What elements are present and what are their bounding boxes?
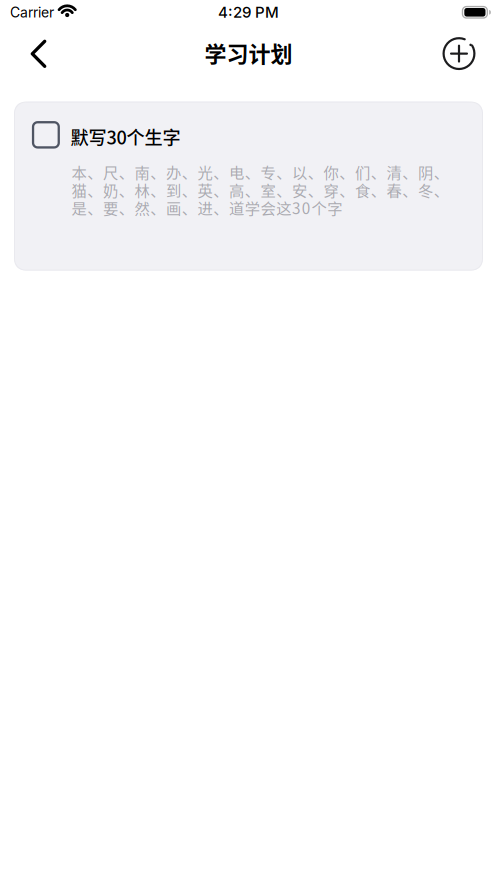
staticText: 学习计划 (204, 37, 292, 69)
staticText: Carrier (10, 4, 54, 21)
button[interactable]: Back (16, 30, 60, 76)
button[interactable]: 默写30个生字 (14, 102, 483, 271)
button[interactable]: Add (437, 30, 481, 76)
staticText: 是、要、然、画、进、道学会这30个字 (71, 196, 342, 219)
staticText: 默写30个生字 (70, 123, 180, 150)
staticText: 本、尺、南、办、光、电、专、以、你、们、清、阴、 (71, 161, 449, 183)
staticText: 4:29 PM (218, 3, 279, 21)
staticText: 猫、奶、林、到、英、高、室、安、穿、食、春、冬、 (71, 179, 449, 201)
